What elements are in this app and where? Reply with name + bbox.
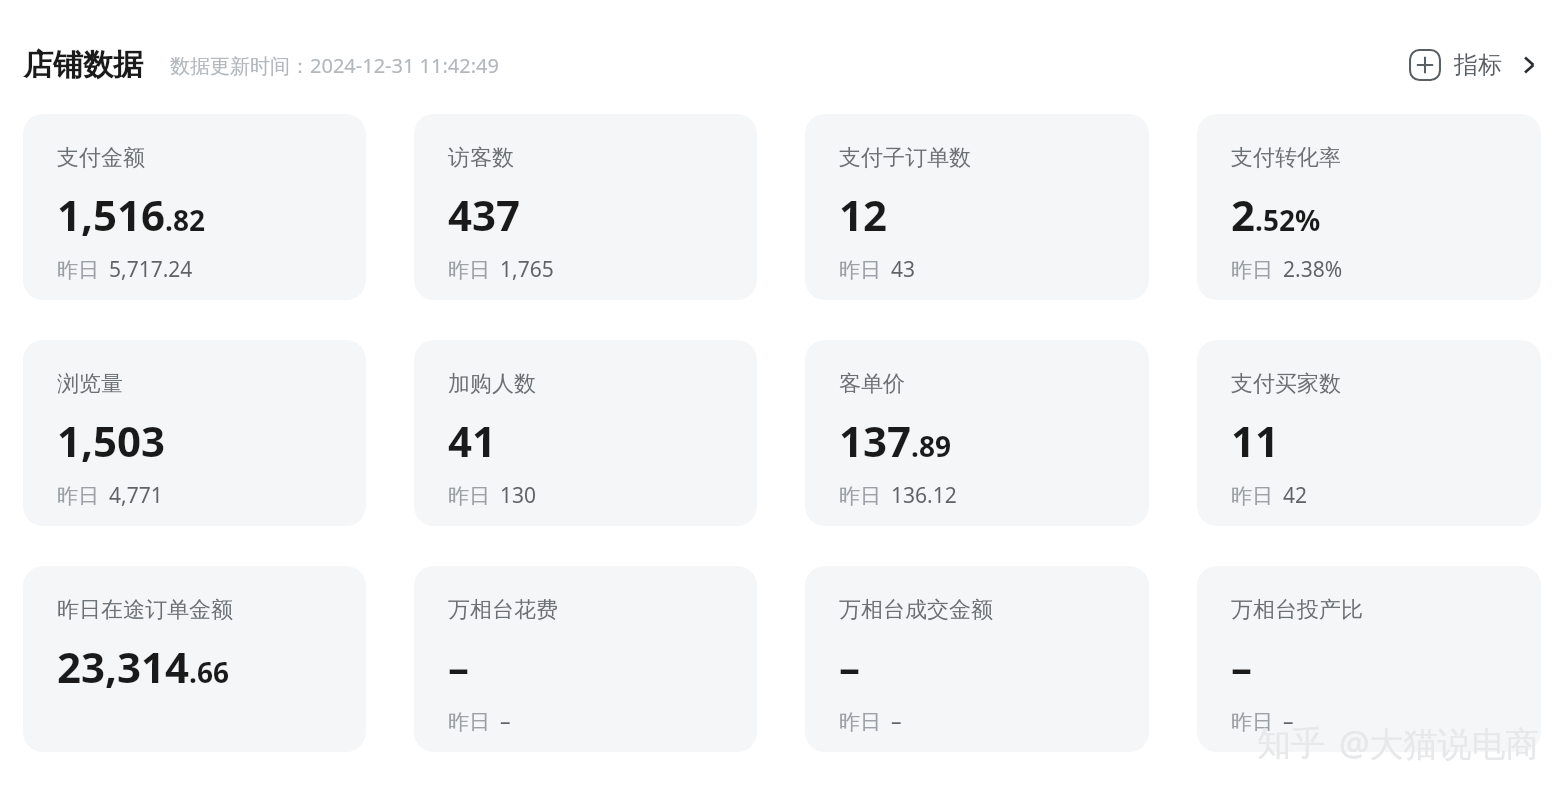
staticText: 浏览量 [57,370,123,398]
button[interactable]: 万相台投产比 [1197,566,1541,752]
staticText: 2.38% [1283,255,1343,284]
button[interactable]: 万相台成交金额 [805,566,1149,752]
staticText: 昨日 [57,483,99,509]
staticText: – [891,707,902,736]
button[interactable]: 昨日在途订单金额 [23,566,366,752]
staticText: 客单价 [839,370,905,398]
staticText: @大猫说电商 [1339,720,1540,766]
staticText: 加购人数 [448,370,536,398]
staticText: 41 [448,412,497,469]
staticText: 42 [1283,481,1308,510]
staticText: 昨日 [839,709,881,735]
staticText: 5,717.24 [109,255,193,284]
staticText: 昨日 [1231,709,1273,735]
staticText: 支付转化率 [1231,144,1341,172]
staticText: 2.52% [1231,186,1321,243]
button[interactable]: 支付子订单数 [805,114,1149,300]
staticText: 支付子订单数 [839,144,971,172]
staticText: 昨日 [1231,483,1273,509]
button[interactable]: 加购人数 [414,340,757,526]
staticText: 137.89 [839,412,951,469]
staticText: 昨日 [57,257,99,283]
staticText: 昨日 [839,483,881,509]
button[interactable]: 客单价 [805,340,1149,526]
button[interactable]: Add metric [1404,44,1544,86]
other: Add metric [1408,48,1442,82]
other: More [1518,54,1540,76]
staticText: 昨日 [839,257,881,283]
staticText: 1,503 [57,412,166,469]
staticText: 支付金额 [57,144,145,172]
staticText: 437 [448,186,521,243]
staticText: 万相台花费 [448,596,558,624]
staticText: 昨日 [448,483,490,509]
staticText: 4,771 [109,481,163,510]
staticText: 23,314.66 [57,638,229,695]
staticText: – [500,707,511,736]
staticText: 136.12 [891,481,957,510]
button[interactable]: 支付转化率 [1197,114,1541,300]
staticText: 1,765 [500,255,554,284]
staticText: 1,516.82 [57,186,205,243]
staticText: 指标 [1454,50,1502,80]
button[interactable]: 访客数 [414,114,757,300]
staticText: 11 [1231,412,1280,469]
staticText: – [448,638,470,695]
staticText: 43 [891,255,916,284]
button[interactable]: 浏览量 [23,340,366,526]
staticText: 昨日在途订单金额 [57,596,233,624]
staticText: 130 [500,481,537,510]
staticText: – [1283,707,1294,736]
staticText: 昨日 [448,709,490,735]
staticText: 万相台成交金额 [839,596,993,624]
staticText: 万相台投产比 [1231,596,1363,624]
staticText: 昨日 [448,257,490,283]
staticText: 知乎 [1257,722,1325,765]
staticText: 支付买家数 [1231,370,1341,398]
staticText: 昨日 [1231,257,1273,283]
staticText: 数据更新时间：2024-12-31 11:42:49 [170,52,499,79]
button[interactable]: 支付买家数 [1197,340,1541,526]
staticText: 访客数 [448,144,514,172]
staticText: – [839,638,861,695]
button[interactable]: 万相台花费 [414,566,757,752]
staticText: 12 [839,186,888,243]
button[interactable]: 支付金额 [23,114,366,300]
staticText: 店铺数据 [23,46,143,84]
staticText: – [1231,638,1253,695]
